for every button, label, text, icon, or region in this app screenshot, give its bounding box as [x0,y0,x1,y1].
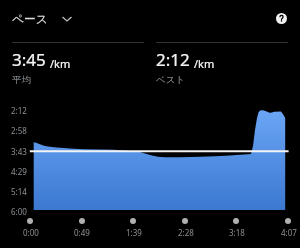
staticText: 5:14 [11,186,27,197]
staticText: 2:12 [11,105,27,116]
staticText: 0:49 [74,227,90,237]
staticText: 2:58 [11,125,27,136]
staticText: 6:00 [11,206,27,217]
staticText: 4:29 [11,166,27,177]
staticText: 3:18 [229,227,245,237]
staticText: /km [50,56,71,71]
staticText: 3:45 [12,48,46,71]
staticText: 2:28 [178,227,194,237]
staticText: /km [194,56,215,71]
button[interactable]: Help [270,7,293,30]
staticText: ペース [12,12,48,27]
staticText: 2:12 [156,48,190,71]
button[interactable]: ペース [12,12,76,27]
staticText: 0:00 [23,227,39,237]
staticText: 4:07 [281,227,297,237]
staticText: ベスト [156,74,186,86]
staticText: 1:39 [126,227,142,237]
staticText: 平均 [12,74,31,86]
button[interactable]: 2:12 [156,46,288,86]
staticText: 3:43 [11,146,27,157]
button[interactable]: 3:45 [12,46,144,86]
